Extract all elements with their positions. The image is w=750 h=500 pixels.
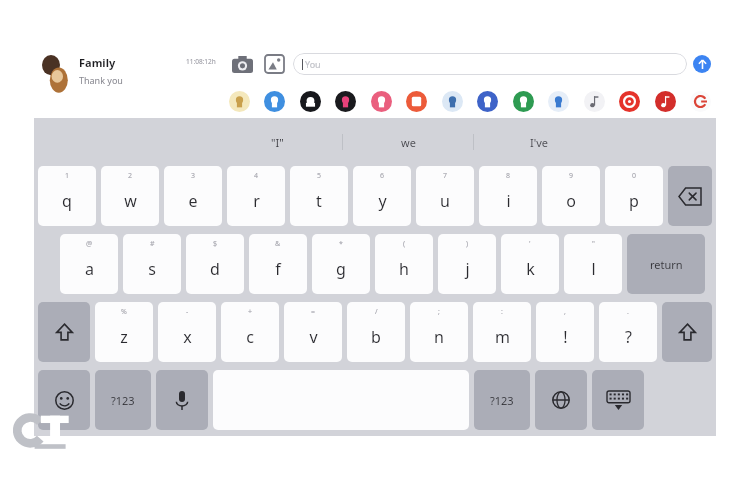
button[interactable]: App shortcut: [406, 91, 427, 112]
button[interactable]: App shortcut: [513, 91, 534, 112]
button[interactable]: Voice input: [156, 370, 208, 430]
button[interactable]: 1: [38, 166, 96, 226]
button[interactable]: :: [473, 302, 531, 362]
button[interactable]: App shortcut: [335, 91, 356, 112]
button[interactable]: Gallery: [261, 51, 287, 77]
button[interactable]: App shortcut: [371, 91, 392, 112]
staticText: z: [120, 326, 128, 348]
staticText: d: [210, 258, 220, 280]
staticText: a: [85, 258, 94, 280]
button[interactable]: Send: [693, 55, 711, 73]
button[interactable]: we: [343, 118, 473, 166]
button[interactable]: =: [284, 302, 342, 362]
button[interactable]: Family: [34, 44, 222, 118]
button[interactable]: App shortcut: [690, 91, 711, 112]
button[interactable]: &: [249, 234, 307, 294]
button[interactable]: @: [60, 234, 118, 294]
button[interactable]: Change language: [535, 370, 587, 430]
button[interactable]: .: [599, 302, 657, 362]
staticText: !: [563, 326, 568, 348]
button[interactable]: App shortcut: [584, 91, 605, 112]
staticText: o: [566, 190, 576, 212]
staticText: f: [275, 258, 281, 280]
staticText: u: [440, 190, 450, 212]
button[interactable]: 9: [542, 166, 600, 226]
button[interactable]: App shortcut: [477, 91, 498, 112]
staticText: ): [466, 239, 469, 249]
button[interactable]: App shortcut: [229, 91, 250, 112]
button[interactable]: -: [158, 302, 216, 362]
button[interactable]: /: [347, 302, 405, 362]
staticText: 5: [317, 171, 322, 181]
button[interactable]: App shortcut: [655, 91, 676, 112]
button[interactable]: App shortcut: [442, 91, 463, 112]
button[interactable]: App shortcut: [264, 91, 285, 112]
button[interactable]: Backspace: [668, 166, 712, 226]
staticText: Family: [79, 55, 116, 70]
staticText: e: [188, 190, 198, 212]
staticText: b: [371, 326, 381, 348]
button[interactable]: 3: [164, 166, 222, 226]
button[interactable]: ?123: [95, 370, 151, 430]
button[interactable]: Shift: [38, 302, 90, 362]
staticText: =: [311, 307, 316, 317]
button[interactable]: ): [438, 234, 496, 294]
staticText: +: [248, 307, 253, 317]
button[interactable]: 2: [101, 166, 159, 226]
button[interactable]: App shortcut: [300, 91, 321, 112]
button[interactable]: return: [627, 234, 705, 294]
staticText: 0: [632, 171, 637, 181]
staticText: 1: [65, 171, 70, 181]
staticText: x: [183, 326, 192, 348]
button[interactable]: App shortcut: [548, 91, 569, 112]
staticText: ": [592, 239, 595, 249]
staticText: g: [336, 258, 346, 280]
button[interactable]: 5: [290, 166, 348, 226]
button[interactable]: Hide keyboard: [592, 370, 644, 430]
button[interactable]: ": [564, 234, 622, 294]
button[interactable]: App shortcut: [619, 91, 640, 112]
button[interactable]: +: [221, 302, 279, 362]
staticText: 6: [380, 171, 385, 181]
staticText: k: [526, 258, 535, 280]
button[interactable]: 6: [353, 166, 411, 226]
button[interactable]: Emoji: [38, 370, 90, 430]
staticText: w: [124, 190, 137, 212]
button[interactable]: ;: [410, 302, 468, 362]
button[interactable]: "I": [212, 118, 342, 166]
button[interactable]: $: [186, 234, 244, 294]
staticText: q: [62, 190, 72, 212]
staticText: ?: [625, 326, 632, 348]
button[interactable]: %: [95, 302, 153, 362]
button[interactable]: Camera: [229, 51, 255, 77]
button[interactable]: Shift: [662, 302, 712, 362]
staticText: v: [309, 326, 318, 348]
button[interactable]: 8: [479, 166, 537, 226]
staticText: i: [506, 190, 511, 212]
staticText: c: [246, 326, 254, 348]
staticText: n: [434, 326, 444, 348]
staticText: ': [529, 239, 531, 249]
staticText: 11:08:12h: [186, 57, 216, 66]
button[interactable]: 7: [416, 166, 474, 226]
button[interactable]: (: [375, 234, 433, 294]
button[interactable]: 4: [227, 166, 285, 226]
staticText: $: [213, 239, 218, 249]
staticText: h: [399, 258, 409, 280]
staticText: #: [150, 239, 155, 249]
staticText: /: [375, 307, 378, 317]
button[interactable]: I've: [474, 118, 604, 166]
staticText: 9: [569, 171, 574, 181]
button[interactable]: 0: [605, 166, 663, 226]
staticText: You: [305, 58, 321, 70]
button[interactable]: *: [312, 234, 370, 294]
staticText: *: [339, 239, 343, 249]
button[interactable]: You: [293, 53, 687, 75]
staticText: l: [591, 258, 596, 280]
staticText: s: [148, 258, 156, 280]
button[interactable]: ?123: [474, 370, 530, 430]
button[interactable]: ,: [536, 302, 594, 362]
button[interactable]: ': [501, 234, 559, 294]
button[interactable]: #: [123, 234, 181, 294]
